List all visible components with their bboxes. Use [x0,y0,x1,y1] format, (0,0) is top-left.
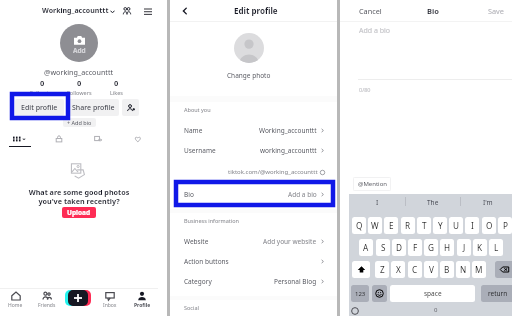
staticText: 0 [434,306,438,314]
button[interactable]: Share profile [68,99,119,116]
staticText: Share profile [72,103,115,113]
button[interactable]: Edit profile [15,99,64,116]
staticText: What are some good photos you've taken r… [0,187,158,206]
button[interactable]: Find friends [122,99,139,116]
button[interactable]: 0 [63,78,95,96]
staticText: U [453,220,459,231]
button[interactable]: Menu [141,4,154,17]
staticText: Friends [38,302,56,309]
staticText: I [376,198,379,207]
button[interactable]: Y [433,217,447,234]
button[interactable]: Add friends [120,4,133,17]
staticText: Website [184,237,209,246]
button[interactable]: C [408,261,422,278]
button[interactable]: A [359,239,373,256]
staticText: + Add bio [67,119,92,126]
button[interactable]: Liked [118,131,158,146]
button[interactable]: S [376,239,390,256]
staticText: The [427,198,439,207]
staticText: J [463,242,466,253]
staticText: Add your website [263,237,317,246]
button[interactable]: Create [65,290,91,306]
button[interactable]: G [424,239,438,256]
button[interactable]: Category [170,271,337,291]
button[interactable]: R [401,217,415,234]
staticText: S [381,242,386,253]
staticText: B [444,264,450,275]
button[interactable]: B [440,261,454,278]
button[interactable]: Profile [126,289,158,310]
button[interactable]: + Add bio [63,118,96,127]
button[interactable]: K [473,239,487,256]
staticText: Following [30,89,55,96]
button[interactable]: P [498,217,512,234]
staticText: I'm [483,198,493,207]
button[interactable]: Private posts [39,131,78,146]
staticText: Likes [110,89,123,96]
staticText: T [422,220,427,231]
button[interactable]: I [465,217,479,234]
button[interactable]: Change photo [234,33,264,63]
button[interactable]: X [391,261,405,278]
button[interactable]: N [456,261,470,278]
button[interactable]: I [350,196,405,208]
staticText: Add a bio [288,190,317,199]
button[interactable]: Action buttons [170,251,337,271]
button[interactable]: W [368,217,382,234]
staticText: Category [184,277,212,286]
button[interactable]: Reposts [78,131,118,146]
staticText: 0 [77,78,82,88]
button[interactable]: Q [352,217,366,234]
staticText: About you [184,106,211,113]
button[interactable]: @Mention [353,177,391,191]
button[interactable]: 0 [26,78,58,96]
button[interactable]: 123 [351,285,369,302]
staticText: P [503,220,508,231]
button[interactable]: Inbox [94,289,126,310]
button[interactable]: Save [488,6,504,16]
button[interactable]: 0 [100,78,132,96]
button[interactable]: D [392,239,406,256]
staticText: K [477,242,483,253]
button[interactable]: T [417,217,431,234]
button[interactable]: O [482,217,496,234]
button[interactable]: Backspace [495,261,512,278]
button[interactable]: Username [170,140,337,160]
staticText: X [396,264,401,275]
staticText: R [405,220,411,231]
button[interactable]: Cancel [359,6,382,16]
staticText: Home [8,302,23,309]
button[interactable]: Friends [31,289,62,310]
button[interactable]: H [440,239,454,256]
button[interactable]: U [449,217,463,234]
button[interactable]: Back [178,4,191,17]
staticText: Upload [67,208,91,217]
button[interactable]: space [390,285,475,302]
button[interactable]: Home [0,289,31,310]
button[interactable]: return [481,285,512,302]
staticText: Change photo [227,71,271,80]
button[interactable]: Working_accounttt [42,6,115,16]
button[interactable]: I'm [460,196,512,208]
button[interactable]: J [457,239,471,256]
button[interactable]: E [384,217,398,234]
button[interactable]: Shift [352,261,370,278]
button[interactable]: Bio [170,184,337,204]
staticText: Profile [134,302,151,309]
button[interactable]: Add profile photo [60,24,98,62]
staticText: Working_accounttt [42,6,109,16]
button[interactable]: Upload [62,207,96,218]
button[interactable]: Z [375,261,389,278]
button[interactable]: Emoji [372,285,387,302]
button[interactable]: Website [170,231,337,251]
button[interactable]: F [408,239,422,256]
button[interactable]: V [424,261,438,278]
button[interactable]: L [489,239,503,256]
button[interactable]: The [405,196,460,208]
staticText: Inbox [103,302,117,309]
button[interactable]: Name [170,120,337,140]
staticText: Social [184,304,199,311]
button[interactable]: Posts [0,131,39,146]
button[interactable]: M [472,261,486,278]
staticText: Cancel [359,6,382,16]
